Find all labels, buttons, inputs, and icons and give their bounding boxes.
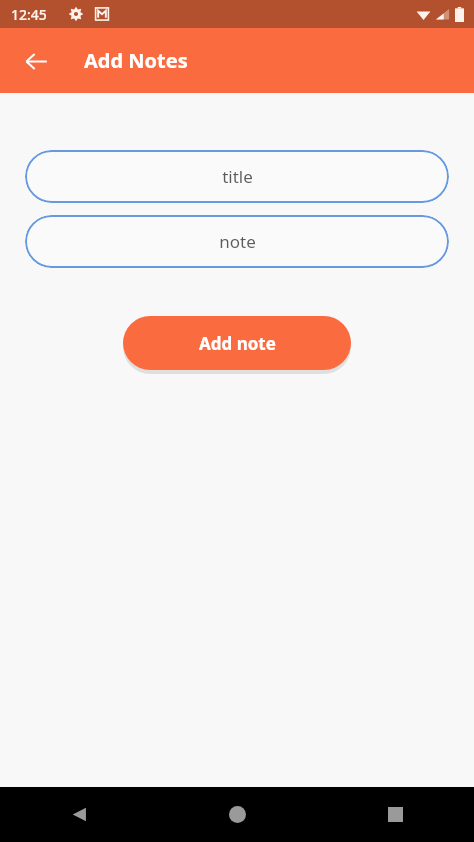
button[interactable]: Home (158, 787, 316, 842)
button[interactable]: Back (14, 39, 58, 83)
staticText: Add Notes (84, 47, 188, 74)
button[interactable]: note (25, 215, 449, 268)
button[interactable]: Add note (123, 316, 351, 370)
button[interactable]: title (25, 150, 449, 203)
staticText: note (219, 230, 256, 253)
staticText: Add note (199, 332, 276, 355)
staticText: 12:45 (11, 5, 47, 24)
staticText: title (222, 165, 253, 188)
button[interactable]: Back (0, 787, 158, 842)
button[interactable]: Recent apps (316, 787, 474, 842)
